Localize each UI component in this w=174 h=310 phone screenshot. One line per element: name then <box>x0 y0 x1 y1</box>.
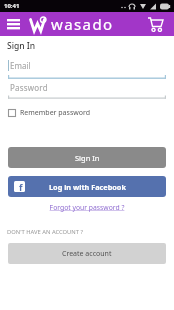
button[interactable] <box>146 14 166 34</box>
staticText: wasado <box>51 14 114 34</box>
staticText: DON'T HAVE AN ACCOUNT ? <box>7 228 84 236</box>
staticText: Email <box>10 60 31 71</box>
button[interactable]: Sign In <box>8 147 166 168</box>
button[interactable]: Forgot your password ? <box>0 203 174 212</box>
staticText: Log in with Facebook <box>49 182 126 192</box>
button[interactable]: Password <box>8 81 166 100</box>
button[interactable] <box>0 12 26 36</box>
staticText: Password <box>10 82 48 93</box>
button[interactable]: Create account <box>8 243 166 264</box>
staticText: Sign In <box>75 153 100 163</box>
button[interactable]: f <box>8 176 166 197</box>
staticText: f <box>19 181 23 192</box>
staticText: 10:41 <box>4 2 20 10</box>
button[interactable]: Remember password <box>8 108 91 118</box>
staticText: Sign In <box>7 40 36 52</box>
button[interactable]: Email <box>8 58 166 80</box>
staticText: Remember password <box>20 108 91 118</box>
staticText: Create account <box>62 249 112 259</box>
